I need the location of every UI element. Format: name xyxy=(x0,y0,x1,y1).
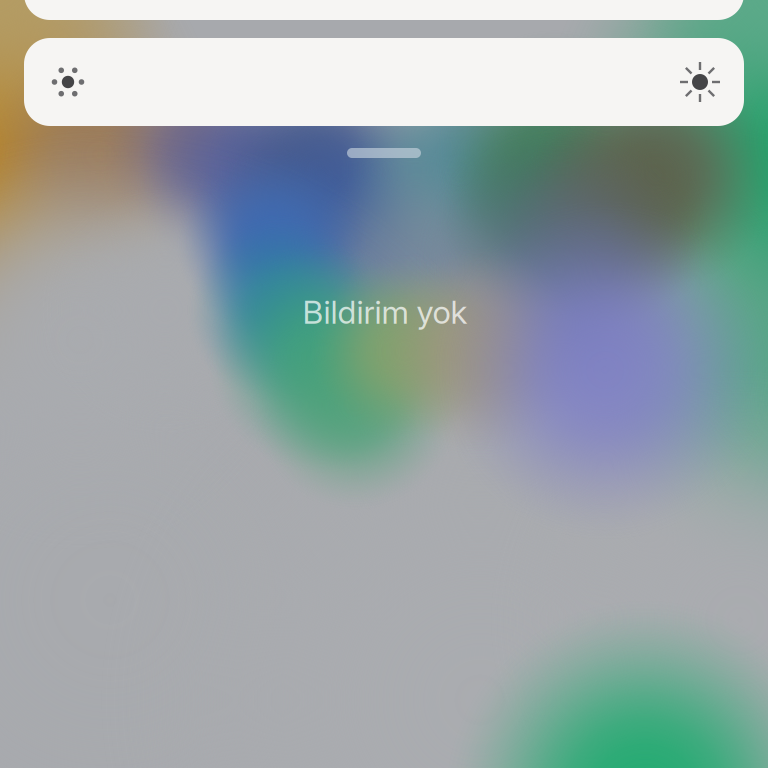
button[interactable]: Volume xyxy=(0,0,768,20)
button[interactable]: Brightness xyxy=(0,38,768,126)
staticText: Bildirim yok xyxy=(302,293,467,331)
